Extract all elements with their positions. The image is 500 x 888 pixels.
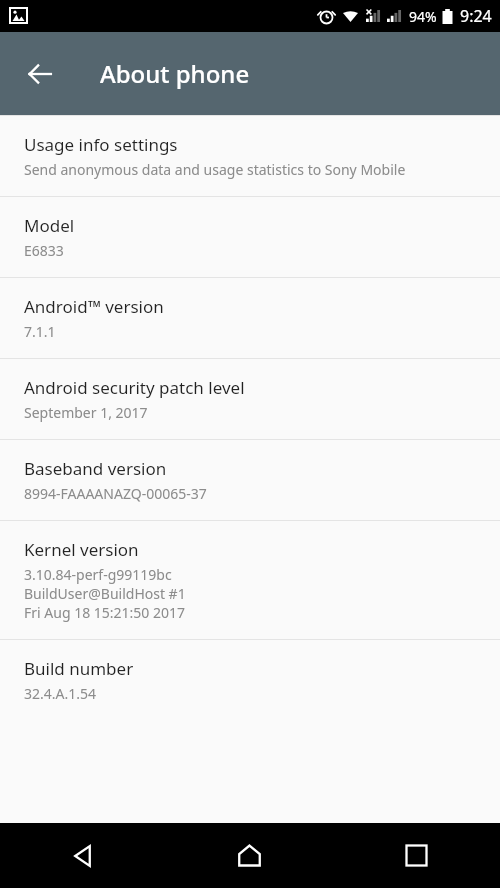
staticText: Model bbox=[24, 214, 75, 237]
staticText: Android security patch level bbox=[24, 376, 245, 399]
staticText: 3.10.84-perf-g99119bc bbox=[24, 565, 172, 584]
staticText: 9:24 bbox=[460, 5, 492, 27]
staticText: 32.4.A.1.54 bbox=[24, 684, 97, 703]
staticText: BuildUser@BuildHost #1 bbox=[24, 584, 186, 603]
button[interactable]: Back bbox=[16, 50, 64, 98]
button[interactable]: Android™ version bbox=[0, 278, 500, 358]
staticText: Baseband version bbox=[24, 457, 167, 480]
staticText: Kernel version bbox=[24, 538, 139, 561]
staticText: 8994-FAAAANAZQ-00065-37 bbox=[24, 484, 207, 503]
button[interactable]: Back bbox=[0, 823, 166, 888]
staticText: Android™ version bbox=[24, 295, 164, 318]
staticText: Usage info settings bbox=[24, 133, 178, 156]
staticText: Build number bbox=[24, 657, 134, 680]
button[interactable]: Android security patch level bbox=[0, 359, 500, 439]
button[interactable]: Kernel version bbox=[0, 521, 500, 639]
staticText: September 1, 2017 bbox=[24, 403, 148, 422]
staticText: E6833 bbox=[24, 241, 64, 260]
staticText: 7.1.1 bbox=[24, 322, 56, 341]
button[interactable]: Recent apps bbox=[333, 823, 500, 888]
button[interactable]: Build number bbox=[0, 640, 500, 720]
staticText: Fri Aug 18 15:21:50 2017 bbox=[24, 603, 186, 622]
button[interactable]: Usage info settings bbox=[0, 116, 500, 196]
staticText: About phone bbox=[100, 57, 250, 90]
button[interactable]: Baseband version bbox=[0, 440, 500, 520]
button[interactable]: Model bbox=[0, 197, 500, 277]
button[interactable]: Home bbox=[166, 823, 333, 888]
staticText: 94% bbox=[409, 7, 437, 26]
staticText: Send anonymous data and usage statistics… bbox=[24, 160, 406, 179]
